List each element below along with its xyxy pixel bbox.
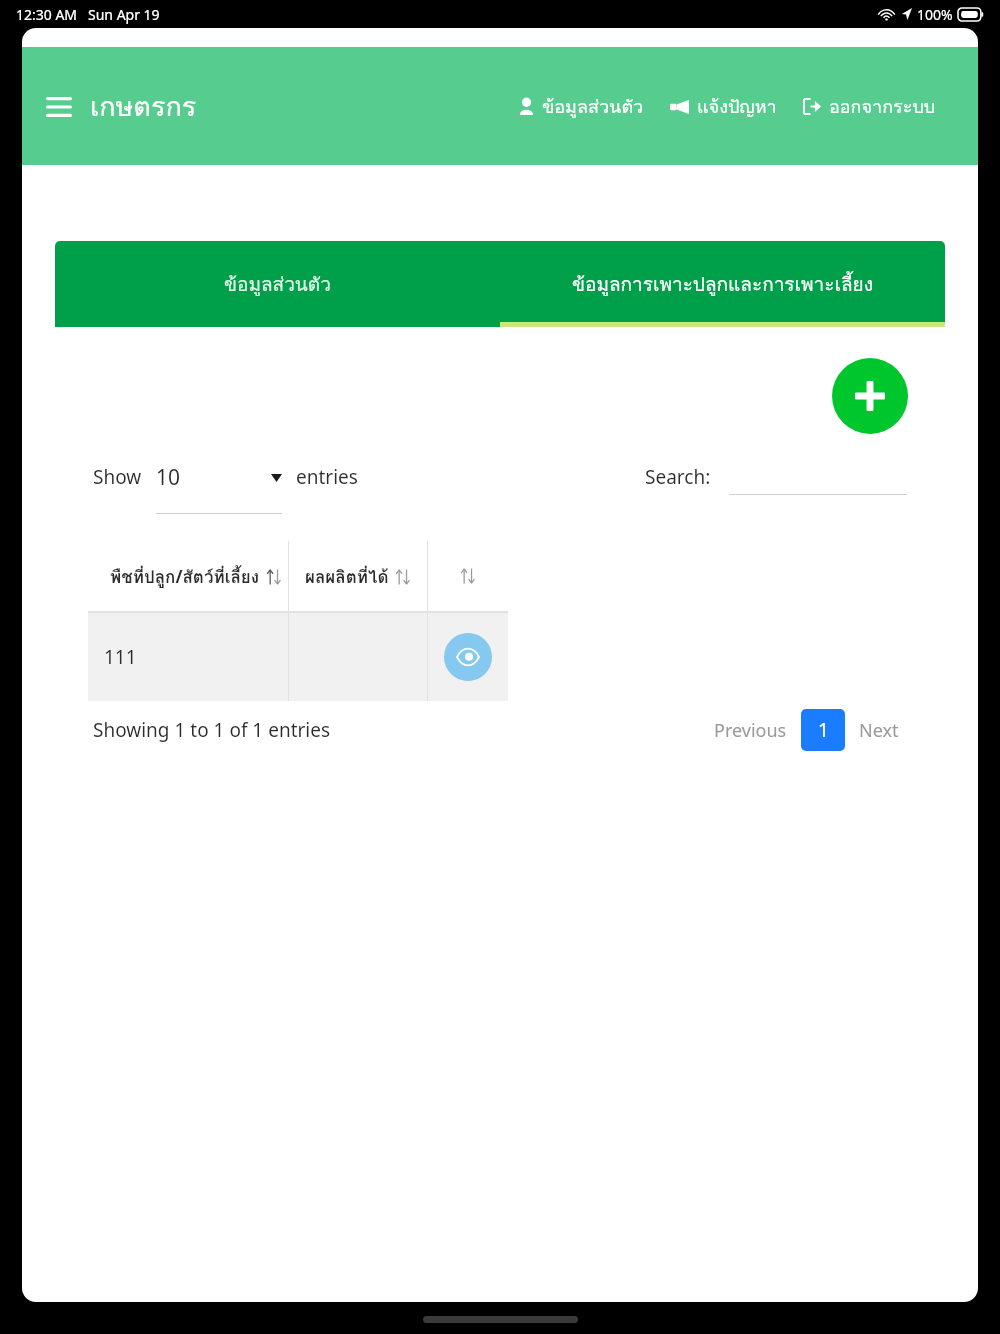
staticText: ข้อมูลการเพาะปลูกและการเพาะเลี้ยง (572, 269, 873, 299)
button[interactable]: Previous (706, 710, 795, 751)
staticText: พืชที่ปลูก/สัตว์ที่เลี้ยง (110, 563, 260, 590)
staticText: เกษตรกร (90, 85, 197, 128)
button[interactable] (428, 541, 508, 611)
staticText: Sun Apr 19 (88, 5, 160, 24)
button[interactable]: ออกจากระบบ (801, 86, 938, 127)
staticText: Next (859, 718, 899, 743)
staticText: 1 (818, 717, 829, 743)
staticText: 100% (917, 5, 953, 24)
staticText: ข้อมูลส่วนตัว (542, 92, 644, 121)
staticText: Show (93, 464, 142, 490)
button[interactable]: พืชที่ปลูก/สัตว์ที่เลี้ยง (88, 541, 288, 611)
button[interactable]: Menu (42, 81, 201, 132)
staticText: entries (296, 464, 358, 490)
staticText: 111 (104, 644, 137, 670)
staticText: ข้อมูลส่วนตัว (224, 269, 331, 299)
staticText: 10 (156, 463, 181, 492)
staticText: Previous (714, 718, 787, 743)
staticText: Showing 1 to 1 of 1 entries (93, 717, 331, 743)
staticText: แจ้งปัญหา (697, 92, 777, 121)
button[interactable]: 1 (801, 709, 845, 751)
button[interactable] (729, 459, 907, 495)
button[interactable]: Next (851, 710, 907, 751)
button[interactable]: Add (832, 358, 908, 434)
button[interactable]: ข้อมูลส่วนตัว (517, 86, 646, 127)
button[interactable]: ผลผลิตที่ได้ (289, 541, 427, 611)
other: Menu (46, 97, 72, 117)
button[interactable]: 10 (156, 463, 282, 492)
staticText: ออกจากระบบ (829, 92, 936, 121)
staticText: ผลผลิตที่ได้ (305, 563, 389, 590)
button[interactable]: แจ้งปัญหา (668, 86, 779, 127)
button[interactable]: View (444, 633, 492, 681)
button[interactable]: ข้อมูลส่วนตัว (55, 241, 500, 327)
button[interactable]: ข้อมูลการเพาะปลูกและการเพาะเลี้ยง (500, 241, 945, 327)
staticText: Search: (645, 464, 711, 490)
staticText: 12:30 AM (16, 5, 78, 24)
